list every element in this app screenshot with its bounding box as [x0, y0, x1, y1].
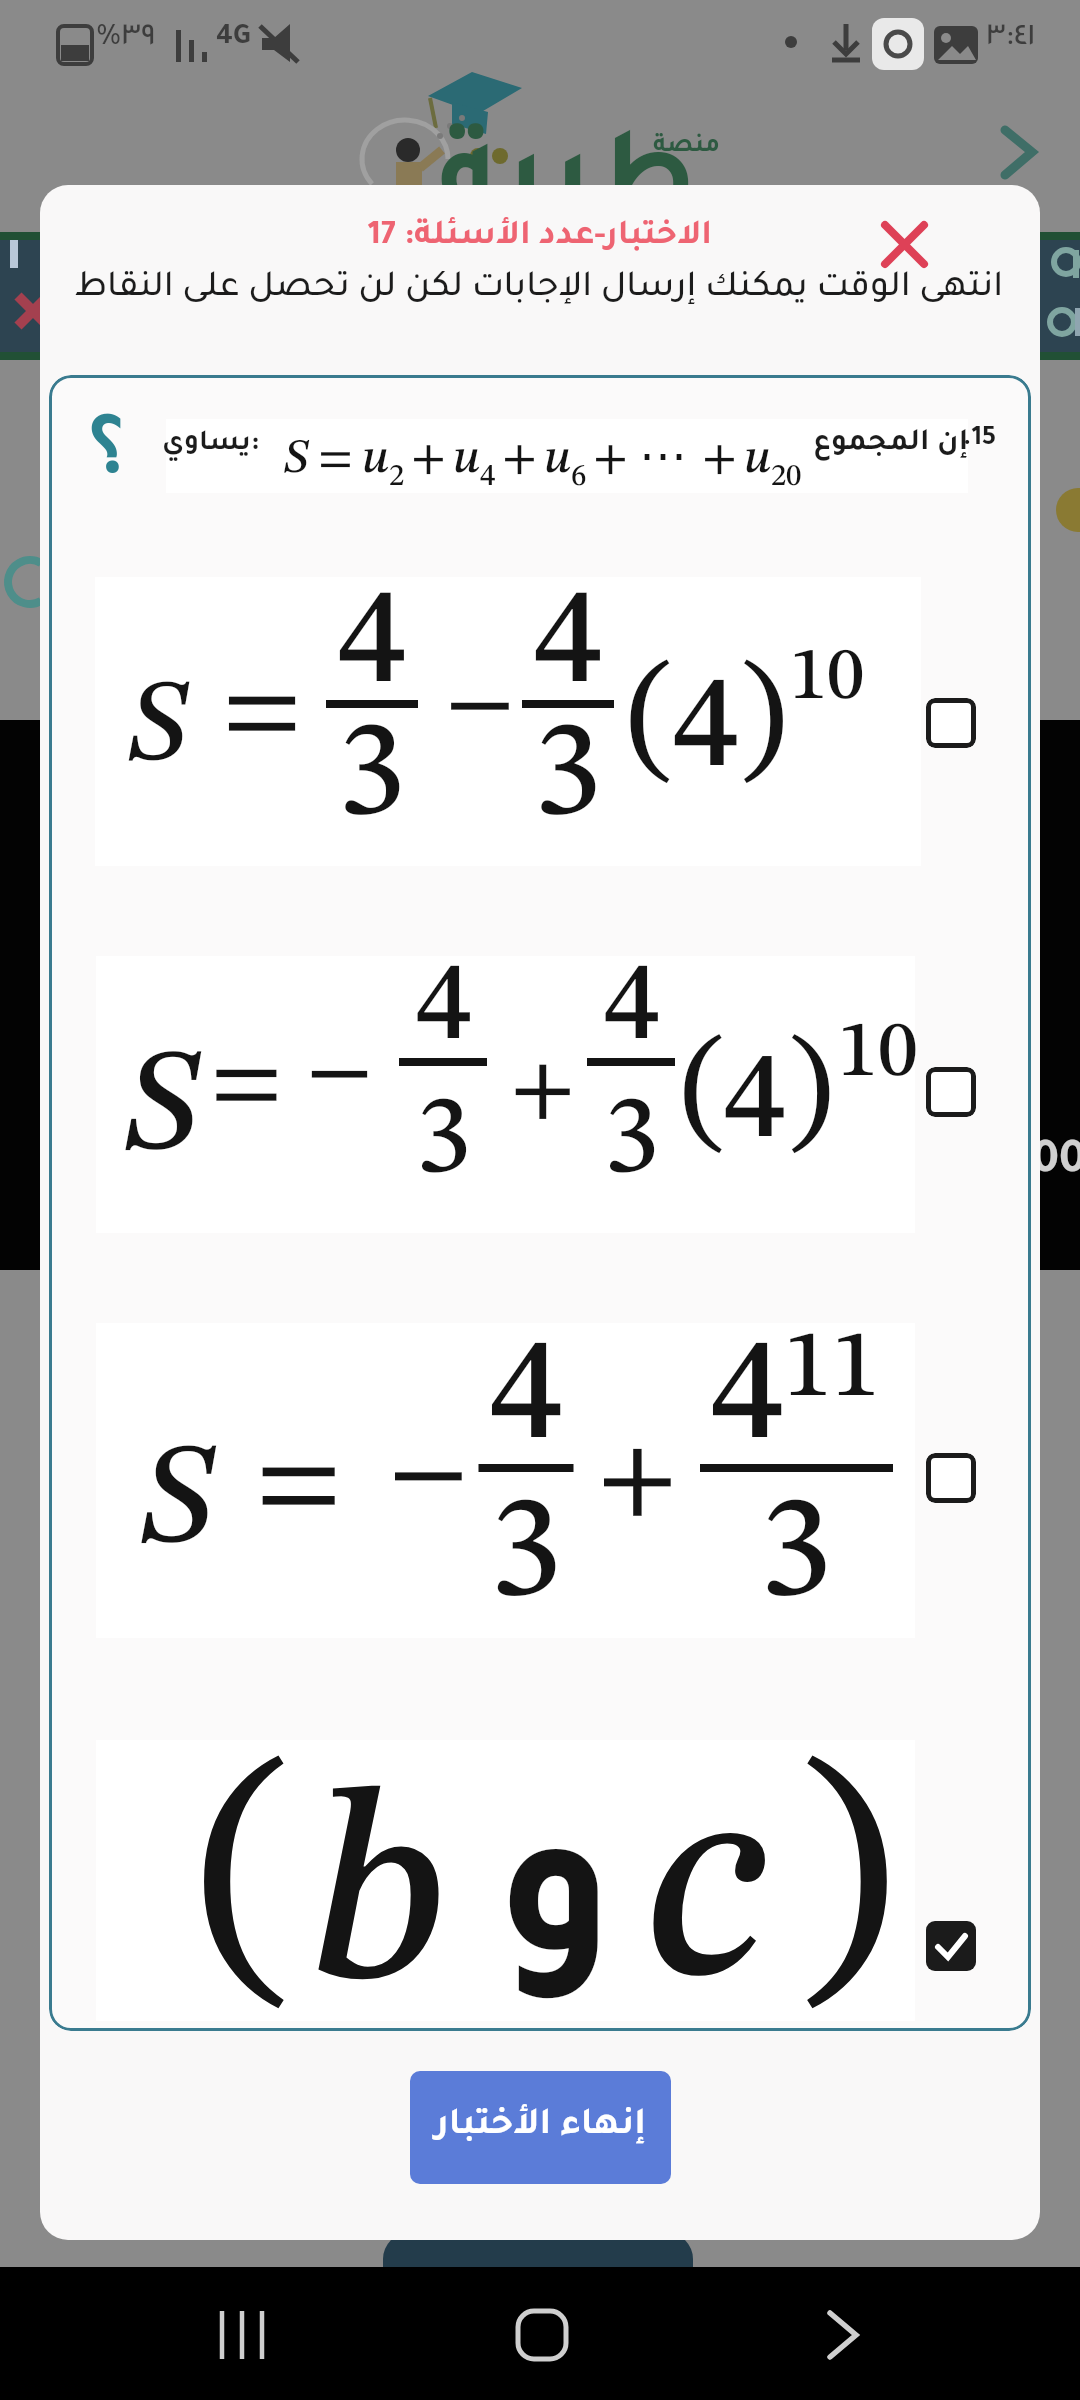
- button[interactable]: [95, 577, 921, 866]
- button[interactable]: [926, 698, 976, 748]
- staticText: ؟: [88, 416, 128, 502]
- staticText: انتهى الوقت يمكنك إرسال الإجابات لكن لن …: [58, 271, 1003, 308]
- button[interactable]: [926, 1921, 976, 1971]
- button[interactable]: إنهاء الأختبار: [410, 2071, 671, 2184]
- staticText: 4G: [216, 24, 251, 54]
- staticText: يساوي:: [162, 430, 260, 459]
- staticText: ٣:٤١: [986, 22, 1036, 56]
- staticText: طيبة: [438, 130, 696, 250]
- button[interactable]: [926, 1067, 976, 1117]
- staticText: إنهاء الأختبار: [435, 2109, 646, 2147]
- staticText: الاختبار-عدد الأسئلة: 17: [170, 220, 910, 255]
- staticText: 00: [1032, 1140, 1080, 1188]
- button[interactable]: [926, 1453, 976, 1503]
- button[interactable]: [882, 222, 927, 267]
- staticText: منصة: [653, 134, 721, 160]
- button[interactable]: [96, 956, 915, 1233]
- staticText: %٣٩: [96, 22, 156, 56]
- staticText: 15.: [962, 426, 996, 454]
- button[interactable]: [96, 1740, 915, 2021]
- staticText: إن المجموع: [813, 429, 969, 460]
- button[interactable]: [96, 1323, 915, 1638]
